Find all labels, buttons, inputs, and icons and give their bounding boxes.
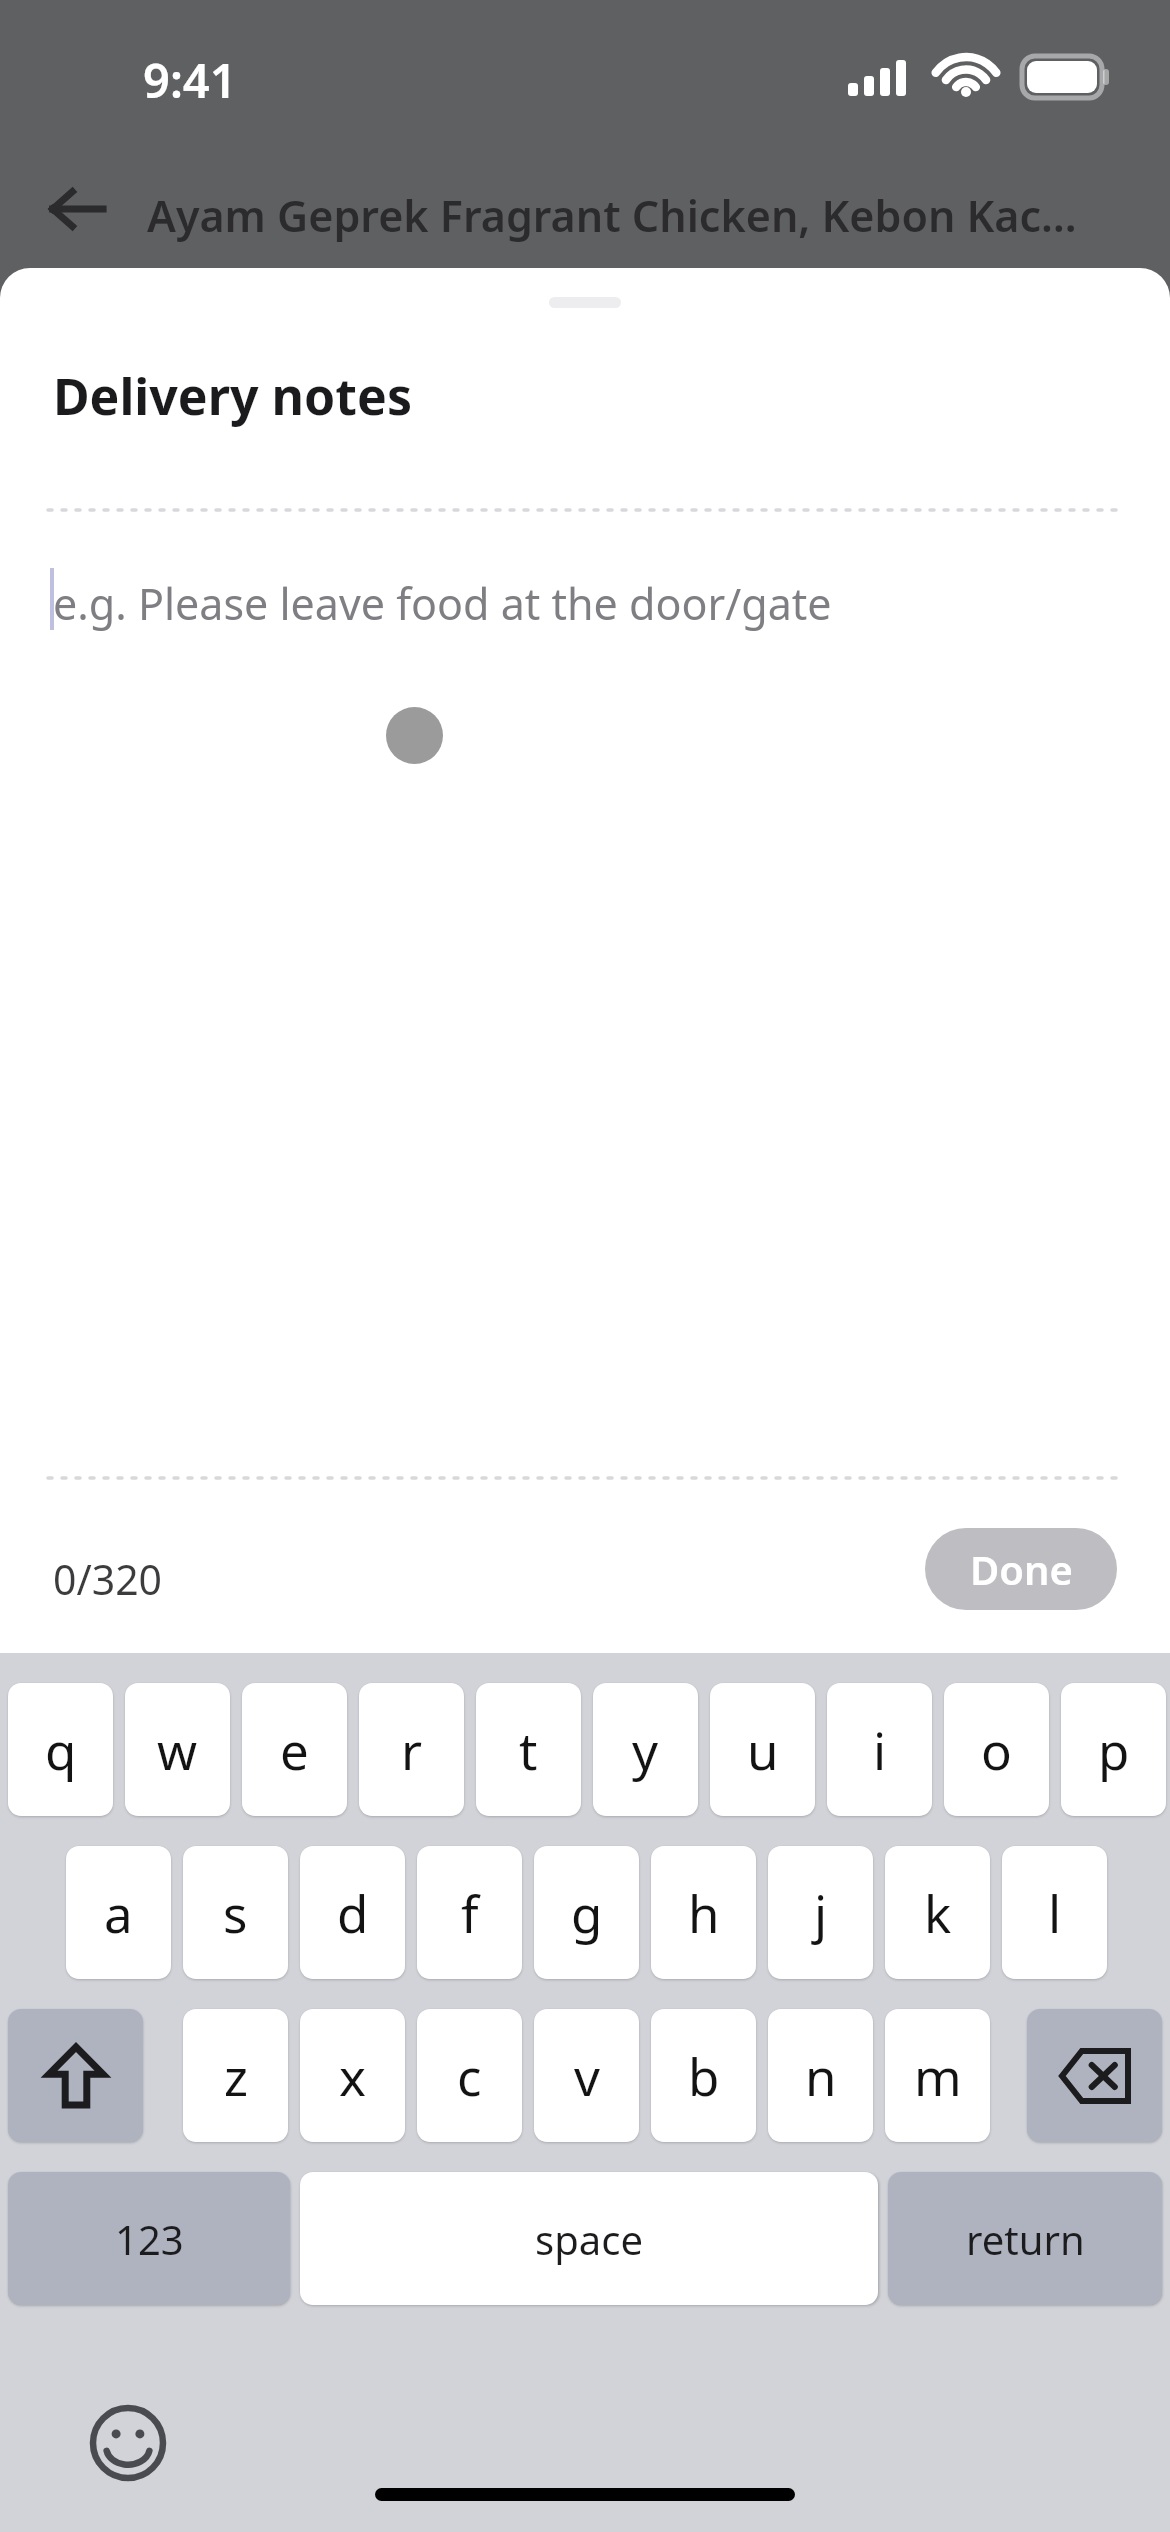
button[interactable]: n [768,2009,873,2142]
staticText: return [966,2212,1085,2266]
staticText: n [805,2041,837,2110]
button[interactable]: s [183,1846,288,1979]
button[interactable]: l [1002,1846,1107,1979]
button[interactable]: c [417,2009,522,2142]
staticText: 9:41 [143,48,237,112]
staticText: a [104,1878,133,1947]
button[interactable]: Shift [8,2009,143,2142]
button[interactable]: e [242,1683,347,1816]
staticText: g [571,1878,603,1947]
button[interactable]: t [476,1683,581,1816]
staticText: u [747,1715,779,1784]
staticText: o [981,1715,1012,1784]
staticText: s [223,1878,248,1947]
button[interactable]: q [8,1683,113,1816]
button[interactable]: 123 [8,2172,290,2305]
staticText: k [924,1878,952,1947]
button[interactable]: k [885,1846,990,1979]
staticText: Ayam Geprek Fragrant Chicken, Kebon Kac… [147,186,1157,245]
staticText: m [914,2041,962,2110]
staticText: r [401,1715,423,1784]
staticText: p [1098,1715,1130,1784]
button[interactable]: z [183,2009,288,2142]
button[interactable]: o [944,1683,1049,1816]
staticText: e [280,1715,309,1784]
staticText: c [457,2041,482,2110]
button[interactable]: w [125,1683,230,1816]
button[interactable]: f [417,1846,522,1979]
button[interactable]: j [768,1846,873,1979]
button[interactable]: Back [28,160,126,258]
staticText: e.g. Please leave food at the door/gate [53,574,832,633]
button[interactable]: u [710,1683,815,1816]
staticText: w [157,1715,198,1784]
staticText: v [574,2041,600,2110]
button[interactable]: Backspace [1027,2009,1162,2142]
button[interactable]: h [651,1846,756,1979]
staticText: y [632,1715,659,1784]
button[interactable]: y [593,1683,698,1816]
staticText: z [224,2041,248,2110]
staticText: d [337,1878,369,1947]
button[interactable]: return [888,2172,1162,2305]
button[interactable]: m [885,2009,990,2142]
staticText: 0/320 [53,1551,163,1607]
button[interactable]: space [300,2172,878,2305]
button[interactable]: r [359,1683,464,1816]
button[interactable]: p [1061,1683,1166,1816]
staticText: f [461,1878,479,1947]
button[interactable]: Emoji [78,2393,178,2493]
button[interactable]: i [827,1683,932,1816]
staticText: i [873,1715,887,1784]
staticText: h [688,1878,720,1947]
staticText: x [339,2041,366,2110]
button[interactable]: a [66,1846,171,1979]
staticText: 123 [115,2212,184,2266]
button[interactable]: b [651,2009,756,2142]
staticText: space [535,2212,643,2266]
staticText: q [45,1715,77,1784]
staticText: Delivery notes [53,362,412,430]
button[interactable]: Done [925,1528,1117,1610]
button[interactable]: v [534,2009,639,2142]
staticText: t [519,1715,538,1784]
staticText: l [1048,1878,1062,1947]
staticText: j [814,1878,828,1947]
button[interactable]: g [534,1846,639,1979]
button[interactable]: d [300,1846,405,1979]
button[interactable]: x [300,2009,405,2142]
staticText: Done [970,1542,1073,1596]
staticText: b [688,2041,720,2110]
